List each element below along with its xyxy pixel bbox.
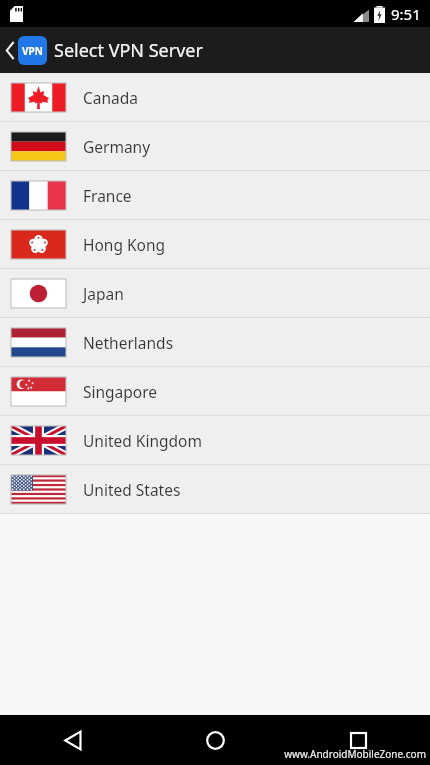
staticText: Germany [83, 136, 151, 157]
staticText: Hong Kong [83, 234, 166, 255]
staticText: Singapore [83, 381, 158, 402]
staticText: Canada [83, 87, 138, 108]
staticText: Netherlands [83, 332, 174, 353]
button[interactable]: Japan [0, 269, 430, 317]
staticText: United States [83, 479, 181, 500]
button[interactable]: Back [0, 715, 144, 765]
button[interactable]: Recent apps [287, 715, 430, 765]
button[interactable]: Singapore [0, 367, 430, 415]
staticText: France [83, 185, 132, 206]
button[interactable]: United States [0, 465, 430, 513]
button[interactable]: Back [0, 32, 53, 69]
button[interactable]: Canada [0, 73, 430, 121]
staticText: VPN [22, 44, 43, 58]
button[interactable]: France [0, 171, 430, 219]
button[interactable]: Home [144, 715, 287, 765]
staticText: Japan [83, 283, 124, 304]
button[interactable]: Hong Kong [0, 220, 430, 268]
staticText: United Kingdom [83, 430, 202, 451]
staticText: 9:51 [391, 4, 421, 24]
button[interactable]: Netherlands [0, 318, 430, 366]
button[interactable]: Germany [0, 122, 430, 170]
button[interactable]: United Kingdom [0, 416, 430, 464]
staticText: Select VPN Server [54, 38, 203, 63]
staticText: www.AndroidMobileZone.com [284, 747, 426, 761]
